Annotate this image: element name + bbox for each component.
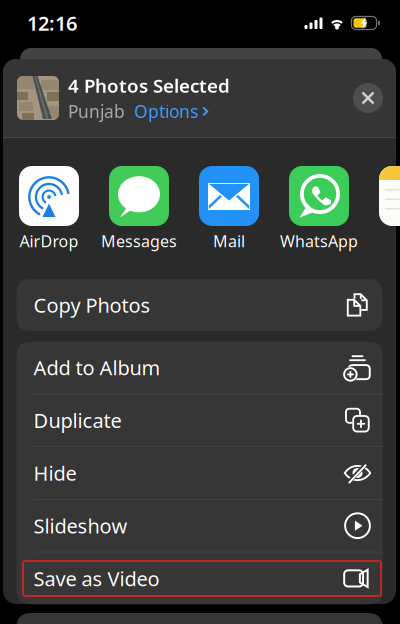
button[interactable]: Options [125, 100, 209, 123]
button[interactable]: Hide [16, 447, 382, 499]
staticText: Mail [213, 230, 245, 252]
staticText: Save as Video [33, 565, 159, 592]
button[interactable]: Duplicate [16, 394, 382, 446]
button[interactable]: AirDrop [19, 166, 79, 248]
button[interactable]: Messages [109, 166, 169, 248]
staticText: Add to Album [33, 354, 160, 381]
button[interactable]: Mail [199, 166, 259, 248]
button[interactable]: Copy Photos [16, 279, 382, 331]
button[interactable]: Slideshow [16, 500, 382, 552]
staticText: AirDrop [19, 230, 78, 252]
staticText: Options [134, 100, 198, 123]
button[interactable]: Save as Video [16, 552, 382, 604]
staticText: Duplicate [33, 407, 121, 434]
button[interactable]: Notes [379, 166, 400, 248]
staticText: Hide [33, 460, 76, 486]
staticText: Punjab [68, 100, 125, 123]
button[interactable]: Add to Album [16, 342, 382, 394]
staticText: WhatsApp [280, 230, 358, 252]
staticText: Slideshow [33, 512, 127, 539]
staticText: 4 Photos Selected [68, 73, 230, 98]
button[interactable]: Close [353, 83, 383, 113]
staticText: Copy Photos [33, 292, 150, 318]
button[interactable]: WhatsApp [289, 166, 349, 248]
staticText: 12:16 [27, 10, 77, 36]
staticText: Messages [101, 230, 177, 252]
